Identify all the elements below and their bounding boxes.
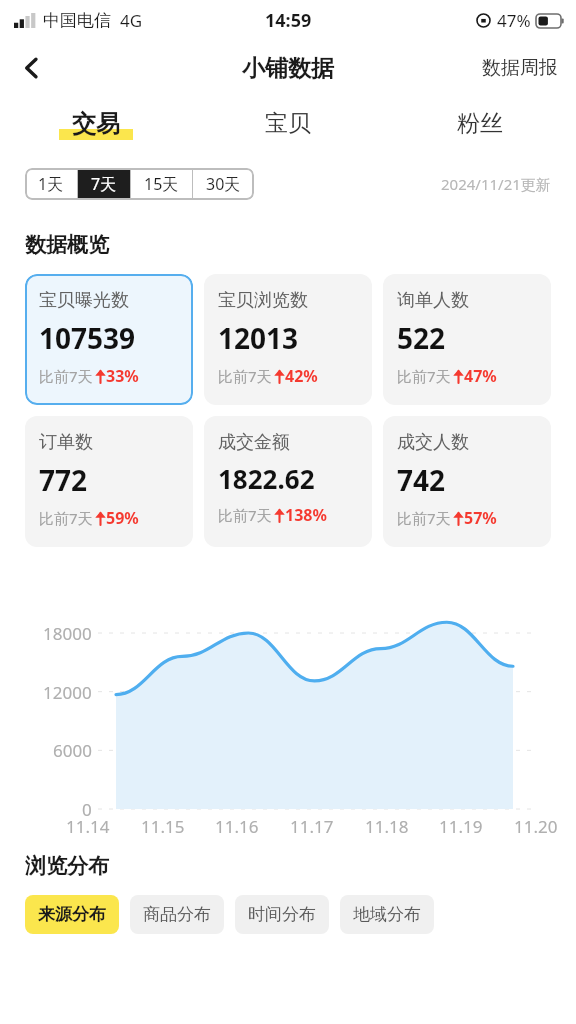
staticText: 宝贝	[265, 109, 311, 138]
button[interactable]: 订单数	[25, 416, 193, 547]
staticText: 宝贝浏览数	[218, 289, 308, 312]
staticText: 772	[39, 461, 88, 499]
button[interactable]: 7天	[78, 168, 130, 200]
staticText: 47%	[497, 9, 531, 32]
staticText: 6000	[53, 739, 92, 762]
staticText: 比前7天	[218, 366, 272, 386]
staticText: 59%	[106, 507, 139, 529]
staticText: 11.15	[141, 815, 185, 838]
staticText: 商品分布	[143, 904, 211, 925]
button[interactable]: 地域分布	[340, 895, 434, 934]
staticText: 比前7天	[39, 366, 93, 386]
staticText: 比前7天	[218, 505, 272, 525]
button[interactable]: 返回	[8, 44, 56, 92]
staticText: 7天	[91, 173, 117, 195]
staticText: 1822.62	[218, 461, 315, 496]
button[interactable]: 商品分布	[130, 895, 224, 934]
staticText: 0	[82, 798, 92, 821]
staticText: 比前7天	[39, 508, 93, 528]
staticText: 宝贝曝光数	[39, 289, 129, 312]
staticText: 浏览分布	[25, 853, 109, 879]
staticText: 来源分布	[38, 904, 106, 925]
button[interactable]: 1天	[25, 168, 77, 200]
staticText: 11.19	[439, 815, 483, 838]
staticText: 107539	[39, 319, 136, 357]
staticText: 2024/11/21更新	[441, 174, 551, 194]
staticText: 18000	[43, 622, 92, 645]
button[interactable]: 30天	[193, 168, 254, 200]
staticText: 数据概览	[25, 232, 109, 258]
button[interactable]: 成交人数	[383, 416, 551, 547]
staticText: 11.20	[514, 815, 558, 838]
staticText: 11.16	[215, 815, 259, 838]
staticText: 数据周报	[482, 56, 558, 80]
button[interactable]: 交易	[0, 96, 192, 152]
staticText: 12013	[218, 319, 299, 357]
staticText: 询单人数	[397, 289, 469, 312]
button[interactable]: 宝贝	[192, 96, 384, 152]
staticText: 地域分布	[353, 904, 421, 925]
staticText: 42%	[285, 365, 318, 387]
button[interactable]: 粉丝	[384, 96, 576, 152]
staticText: 中国电信	[43, 10, 111, 31]
button[interactable]: 成交金额	[204, 416, 372, 547]
staticText: 4G	[120, 9, 143, 32]
staticText: 57%	[464, 507, 497, 529]
staticText: 交易	[72, 109, 120, 139]
staticText: 成交金额	[218, 431, 290, 454]
staticText: 11.17	[290, 815, 334, 838]
staticText: 时间分布	[248, 904, 316, 925]
button[interactable]: 询单人数	[383, 274, 551, 405]
staticText: 138%	[285, 504, 327, 526]
button[interactable]: 数据周报	[464, 44, 576, 92]
staticText: 522	[397, 319, 446, 357]
staticText: 30天	[206, 173, 241, 195]
staticText: 1天	[38, 173, 64, 195]
button[interactable]: 时间分布	[235, 895, 329, 934]
staticText: 14:59	[265, 8, 312, 33]
button[interactable]: 15天	[131, 168, 192, 200]
staticText: 12000	[43, 681, 92, 704]
staticText: 小铺数据	[242, 54, 334, 83]
staticText: 比前7天	[397, 508, 451, 528]
staticText: 比前7天	[397, 366, 451, 386]
staticText: 15天	[144, 173, 179, 195]
staticText: 742	[397, 461, 446, 499]
staticText: 47%	[464, 365, 497, 387]
staticText: 订单数	[39, 431, 93, 454]
staticText: 11.18	[365, 815, 409, 838]
staticText: 33%	[106, 365, 139, 387]
staticText: 成交人数	[397, 431, 469, 454]
staticText: 粉丝	[457, 109, 503, 138]
staticText: 11.14	[66, 815, 110, 838]
button[interactable]: 来源分布	[25, 895, 119, 934]
button[interactable]: 宝贝曝光数	[25, 274, 193, 405]
button[interactable]: 宝贝浏览数	[204, 274, 372, 405]
